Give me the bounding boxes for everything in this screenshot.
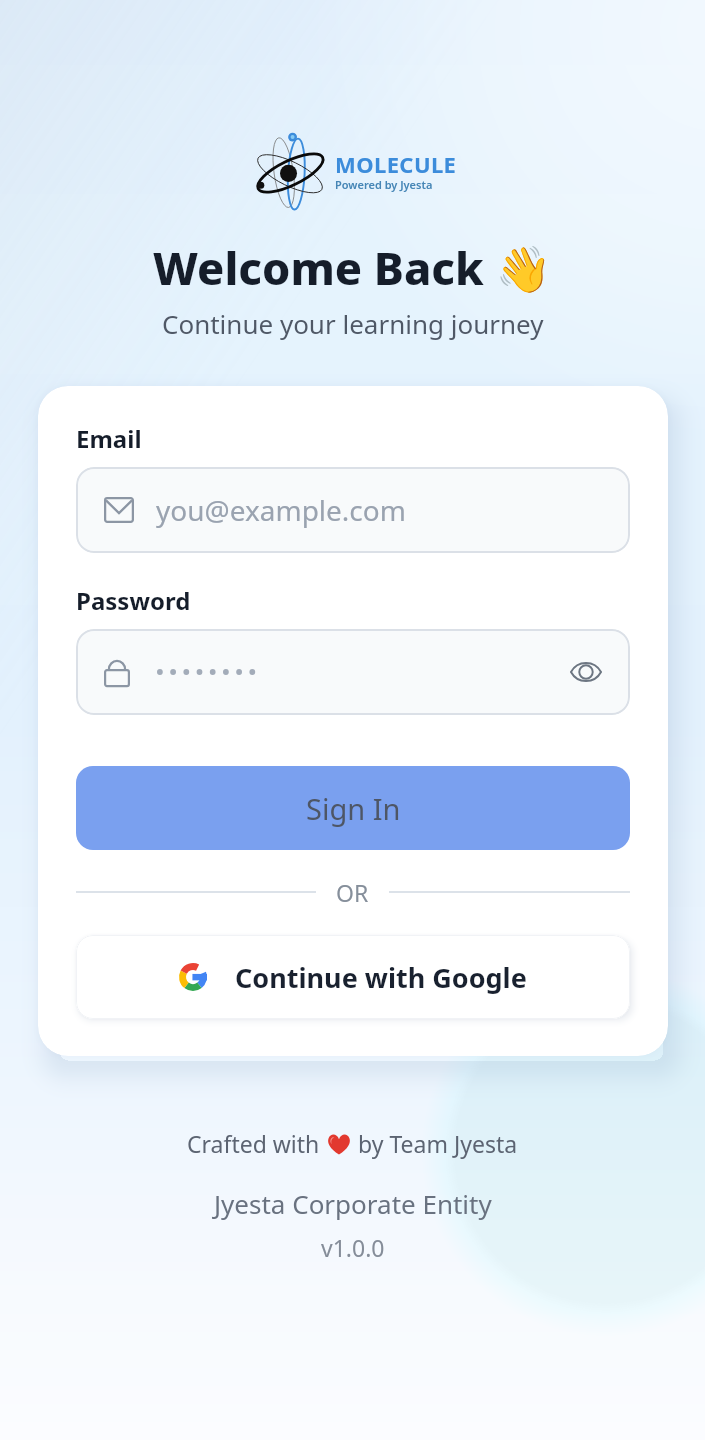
staticText: MOLECULE <box>335 149 457 179</box>
staticText: Welcome Back 👋 <box>153 237 552 298</box>
staticText: Powered by Jyesta <box>335 177 433 192</box>
staticText: by Team Jyesta <box>352 1128 518 1159</box>
button[interactable]: Show password <box>76 629 630 715</box>
staticText: Continue your learning journey <box>162 306 544 341</box>
staticText: Sign In <box>306 789 401 828</box>
staticText: OR <box>336 877 369 908</box>
staticText: Password <box>76 584 191 617</box>
staticText: you@example.com <box>156 491 406 529</box>
button[interactable]: Sign In <box>76 766 630 850</box>
button[interactable]: you@example.com <box>76 467 630 553</box>
staticText: v1.0.0 <box>321 1232 385 1263</box>
staticText: Crafted with <box>187 1128 326 1159</box>
staticText: Email <box>76 422 142 455</box>
staticText: Continue with Google <box>235 959 527 996</box>
button[interactable]: Show password <box>564 650 608 694</box>
staticText: Jyesta Corporate Entity <box>214 1186 492 1221</box>
button[interactable]: Continue with Google <box>76 935 630 1019</box>
